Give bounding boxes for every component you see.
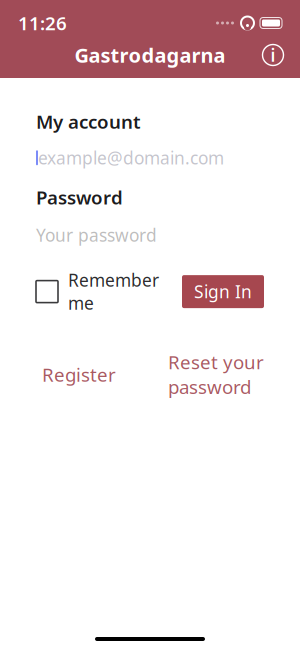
staticText: Register <box>42 362 116 387</box>
staticText: 11:26 <box>18 11 67 35</box>
staticText: example@domain.com <box>38 146 224 169</box>
staticText: Gastrodagarna <box>74 42 225 68</box>
staticText: i <box>270 43 275 66</box>
staticText: Password <box>36 185 123 210</box>
button[interactable]: Register <box>42 358 116 391</box>
button[interactable]: Reset your password <box>168 346 264 403</box>
staticText: Your password <box>36 224 157 247</box>
staticText: Reset your password <box>168 350 264 399</box>
button[interactable]: Remember me <box>36 269 159 315</box>
button[interactable]: Sign In <box>182 275 264 308</box>
button[interactable]: Information <box>256 38 290 72</box>
staticText: Sign In <box>194 280 252 303</box>
staticText: My account <box>36 109 141 134</box>
staticText: Remember me <box>68 269 159 315</box>
